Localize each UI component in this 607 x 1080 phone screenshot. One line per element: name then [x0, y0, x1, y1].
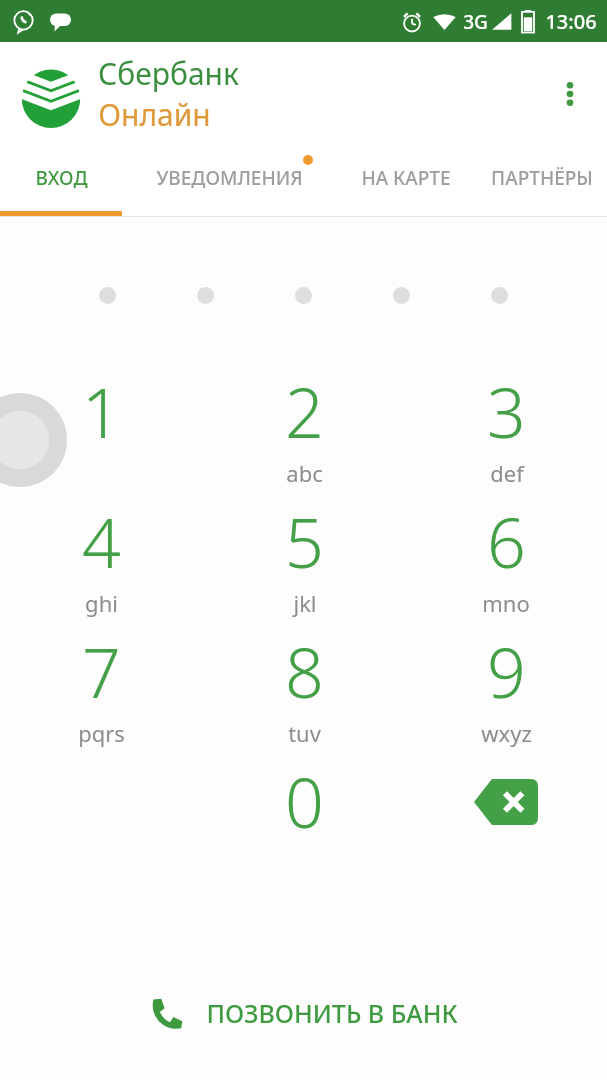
- button[interactable]: НА КАРТЕ: [336, 146, 476, 216]
- staticText: Онлайн: [98, 94, 211, 135]
- button[interactable]: ПОЗВОНИТЬ В БАНК: [132, 986, 476, 1040]
- staticText: 0: [285, 755, 324, 848]
- staticText: 4: [82, 495, 121, 588]
- staticText: 7: [82, 625, 121, 718]
- staticText: 1: [82, 365, 121, 458]
- staticText: 5: [285, 495, 324, 588]
- staticText: def: [490, 458, 524, 488]
- staticText: mno: [482, 588, 530, 618]
- staticText: УВЕДОМЛЕНИЯ: [156, 165, 303, 191]
- staticText: 8: [285, 625, 324, 718]
- staticText: ПАРТНЁРЫ: [491, 165, 593, 191]
- button[interactable]: УВЕДОМЛЕНИЯ: [122, 146, 336, 216]
- staticText: pqrs: [78, 718, 125, 748]
- staticText: 2: [285, 365, 324, 458]
- button[interactable]: 7: [0, 625, 203, 755]
- staticText: ghi: [85, 588, 118, 618]
- staticText: 6: [487, 495, 526, 588]
- staticText: wxyz: [481, 718, 532, 748]
- staticText: abc: [286, 458, 323, 488]
- staticText: tuv: [288, 718, 321, 748]
- button[interactable]: 6: [405, 495, 607, 625]
- button[interactable]: ВХОД: [0, 146, 122, 216]
- button[interactable]: Backspace: [405, 755, 607, 885]
- staticText: 3G: [463, 9, 488, 35]
- staticText: jkl: [293, 588, 317, 618]
- staticText: ПОЗВОНИТЬ В БАНК: [206, 996, 458, 1030]
- button[interactable]: More options: [545, 69, 595, 119]
- staticText: 13:06: [545, 8, 597, 35]
- staticText: 3: [487, 365, 526, 458]
- button[interactable]: ПАРТНЁРЫ: [476, 146, 607, 216]
- staticText: ВХОД: [35, 165, 88, 191]
- button[interactable]: 3: [405, 365, 607, 495]
- button[interactable]: 5: [203, 495, 405, 625]
- button[interactable]: 4: [0, 495, 203, 625]
- button[interactable]: 2: [203, 365, 405, 495]
- button[interactable]: 9: [405, 625, 607, 755]
- button[interactable]: 8: [203, 625, 405, 755]
- staticText: Сбербанк: [98, 53, 239, 94]
- staticText: НА КАРТЕ: [361, 165, 451, 191]
- button[interactable]: 1: [0, 365, 203, 495]
- staticText: 9: [487, 625, 526, 718]
- button[interactable]: 0: [203, 755, 405, 885]
